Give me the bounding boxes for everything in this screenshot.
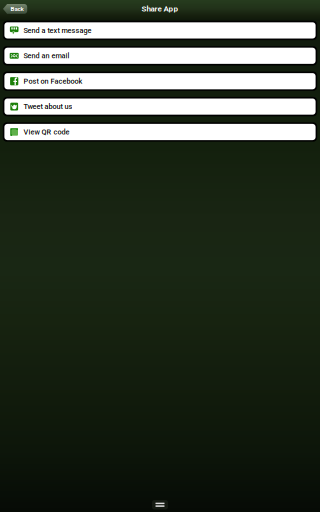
button[interactable]: Send an email [3,46,317,65]
staticText: Post on Facebook [23,77,82,85]
button[interactable]: Send a text message [3,21,317,40]
button[interactable]: View QR code [3,122,317,142]
staticText: Back [10,5,23,12]
staticText: Send a text message [23,26,91,35]
staticText: Send an email [23,51,69,60]
button[interactable]: Menu [152,500,168,509]
button[interactable]: Back [3,4,27,14]
staticText: View QR code [23,128,69,136]
staticText: Share App [141,4,178,14]
staticText: Tweet about us [23,102,72,111]
button[interactable]: Tweet about us [3,97,317,116]
button[interactable]: Post on Facebook [3,71,317,91]
